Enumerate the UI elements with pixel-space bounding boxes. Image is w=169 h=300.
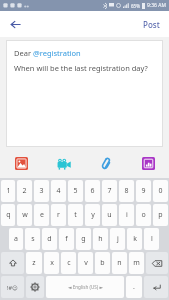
button[interactable]: Dear @registration: [6, 40, 163, 147]
button[interactable]: r: [51, 204, 66, 226]
staticText: l: [151, 234, 153, 244]
button[interactable]: 7: [102, 180, 117, 202]
staticText: Dear @registration: [14, 48, 81, 58]
button[interactable]: 9: [136, 180, 151, 202]
staticText: z: [32, 258, 36, 268]
button[interactable]: y: [85, 204, 100, 226]
staticText: h: [98, 234, 103, 244]
staticText: 3: [39, 186, 44, 196]
button[interactable]: g: [76, 228, 91, 250]
button[interactable]: Settings: [26, 276, 44, 298]
staticText: d: [47, 234, 52, 244]
staticText: c: [67, 258, 71, 268]
staticText: v: [84, 258, 88, 268]
button[interactable]: Post: [139, 16, 164, 33]
button[interactable]: p: [153, 204, 168, 226]
button[interactable]: b: [95, 252, 110, 274]
staticText: a: [14, 234, 18, 244]
button[interactable]: j: [110, 228, 125, 250]
staticText: y: [91, 210, 95, 220]
button[interactable]: Enter: [144, 276, 168, 298]
button[interactable]: h: [93, 228, 108, 250]
staticText: n: [117, 258, 122, 268]
button[interactable]: 5: [68, 180, 83, 202]
button[interactable]: 4: [51, 180, 66, 202]
staticText: b: [100, 258, 105, 268]
staticText: 0: [158, 186, 163, 196]
button[interactable]: o: [136, 204, 151, 226]
staticText: s: [31, 234, 35, 244]
staticText: e: [40, 210, 44, 220]
button[interactable]: q: [1, 204, 15, 226]
staticText: When will be the last registration day?: [14, 63, 148, 73]
button[interactable]: d: [42, 228, 57, 250]
staticText: Post: [143, 19, 160, 30]
button[interactable]: .: [126, 276, 142, 298]
staticText: 1: [6, 186, 11, 196]
staticText: u: [107, 210, 112, 220]
button[interactable]: m: [129, 252, 144, 274]
staticText: p: [158, 210, 163, 220]
staticText: g: [81, 234, 86, 244]
button[interactable]: Add photo: [0, 149, 43, 178]
button[interactable]: 8: [119, 180, 134, 202]
staticText: r: [57, 210, 60, 220]
staticText: t: [74, 210, 77, 220]
button[interactable]: Back: [4, 13, 26, 35]
button[interactable]: Add poll: [127, 149, 169, 178]
staticText: 6: [90, 186, 95, 196]
staticText: 65%: [131, 3, 140, 9]
button[interactable]: Space: [46, 276, 124, 298]
button[interactable]: z: [26, 252, 42, 274]
staticText: w: [22, 210, 28, 220]
button[interactable]: f: [59, 228, 74, 250]
staticText: i: [126, 210, 128, 220]
button[interactable]: w: [17, 204, 32, 226]
button[interactable]: u: [102, 204, 117, 226]
staticText: 9:36 AM: [147, 2, 166, 9]
button[interactable]: Attach file: [85, 149, 127, 178]
button[interactable]: 2: [17, 180, 32, 202]
button[interactable]: 3: [34, 180, 49, 202]
button[interactable]: Add video: [43, 149, 85, 178]
button[interactable]: n: [112, 252, 127, 274]
button[interactable]: Backspace: [146, 252, 168, 274]
staticText: 2: [22, 186, 27, 196]
staticText: 5: [73, 186, 78, 196]
staticText: k: [133, 234, 137, 244]
button[interactable]: l: [144, 228, 159, 250]
button[interactable]: 1: [1, 180, 15, 202]
staticText: m: [133, 258, 140, 268]
staticText: 9: [141, 186, 146, 196]
staticText: f: [65, 234, 68, 244]
button[interactable]: Shift: [1, 252, 24, 274]
staticText: q: [6, 210, 11, 220]
button[interactable]: c: [61, 252, 76, 274]
button[interactable]: v: [78, 252, 93, 274]
button[interactable]: Symbols: [1, 276, 24, 298]
staticText: j: [117, 234, 119, 244]
button[interactable]: 6: [85, 180, 100, 202]
staticText: 4: [56, 186, 61, 196]
button[interactable]: x: [44, 252, 59, 274]
staticText: x: [50, 258, 54, 268]
button[interactable]: k: [127, 228, 142, 250]
staticText: ◄ English (US) ►: [68, 284, 103, 290]
button[interactable]: i: [119, 204, 134, 226]
button[interactable]: t: [68, 204, 83, 226]
button[interactable]: s: [25, 228, 40, 250]
staticText: .: [133, 282, 135, 292]
staticText: o: [141, 210, 146, 220]
button[interactable]: a: [9, 228, 23, 250]
staticText: !#☺: [7, 284, 18, 291]
staticText: 8: [124, 186, 129, 196]
button[interactable]: e: [34, 204, 49, 226]
button[interactable]: 0: [153, 180, 168, 202]
staticText: 7: [107, 186, 112, 196]
